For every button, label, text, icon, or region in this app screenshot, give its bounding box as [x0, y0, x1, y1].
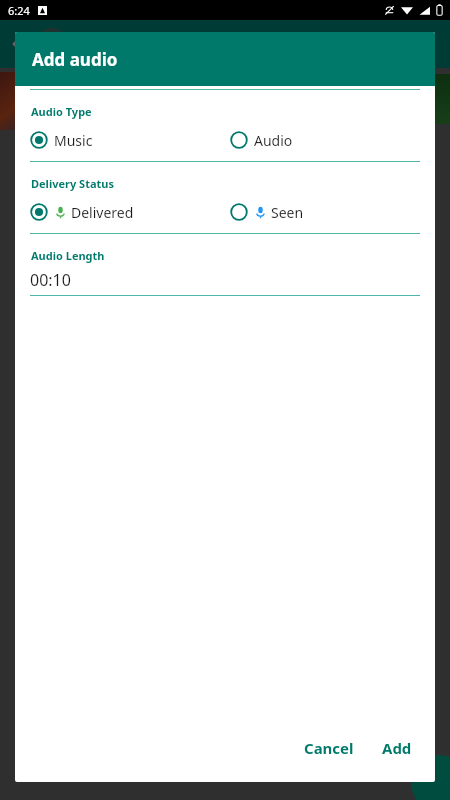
- button[interactable]: Cancel: [293, 730, 365, 766]
- staticText: Charlie: [76, 34, 127, 54]
- staticText: Cancel: [304, 738, 354, 758]
- staticText: Music: [54, 131, 93, 150]
- button[interactable]: 00:10: [30, 267, 420, 293]
- button[interactable]: Music: [30, 125, 230, 155]
- staticText: 6:24: [8, 3, 30, 18]
- button[interactable]: Delivered: [30, 197, 230, 227]
- staticText: 00:10: [30, 269, 71, 291]
- staticText: Add: [382, 738, 412, 758]
- staticText: Audio Length: [31, 248, 105, 263]
- button[interactable]: Add message: [411, 755, 450, 800]
- button[interactable]: Add: [371, 730, 423, 766]
- button[interactable]: Audio: [230, 125, 410, 155]
- staticText: Audio Type: [31, 104, 92, 119]
- button[interactable]: Seen: [230, 197, 410, 227]
- staticText: Delivery Status: [31, 176, 114, 191]
- staticText: Delivered: [71, 203, 134, 222]
- staticText: Audio: [254, 131, 293, 150]
- staticText: Add audio: [32, 48, 118, 71]
- staticText: Seen: [271, 203, 304, 222]
